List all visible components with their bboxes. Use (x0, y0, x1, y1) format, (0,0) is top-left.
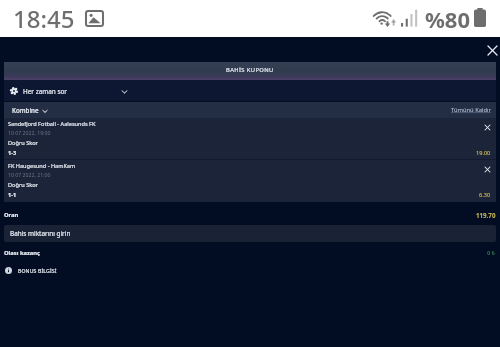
staticText: BONUS BİLGİSİ (18, 267, 57, 274)
staticText: BAHİS KUPONU (226, 66, 274, 74)
staticText: 119.70 (476, 211, 496, 219)
button[interactable]: Her zaman sor (4, 80, 496, 101)
button[interactable]: BONUS BİLGİSİ (2, 263, 57, 278)
staticText: 10 07 2022, 21:00 (8, 171, 51, 178)
staticText: Bahis miktarını girin (10, 229, 71, 238)
staticText: Oran (4, 211, 19, 219)
staticText: %80 (425, 4, 471, 34)
button[interactable]: Bahis miktarını girin (4, 225, 496, 242)
staticText: Doğru Skor (8, 181, 38, 189)
button[interactable]: BAHİS KUPONU (4, 62, 496, 80)
staticText: Sandefjord Fotball - Aalesunds FK (8, 120, 96, 128)
staticText: 18:45 (13, 2, 75, 35)
button[interactable]: Close (483, 41, 500, 60)
staticText: Tümünü Kaldır (451, 106, 491, 114)
staticText: 10 07 2022, 19:00 (8, 129, 51, 136)
button[interactable]: Remove bet (478, 160, 496, 176)
staticText: 19.00 (476, 149, 491, 157)
button[interactable]: Remove bet (478, 118, 496, 134)
staticText: 1-3 (8, 149, 17, 157)
staticText: 6.30 (479, 191, 491, 199)
button[interactable]: Tümünü Kaldır (451, 102, 496, 118)
button[interactable]: Kombine (4, 102, 50, 118)
staticText: Her zaman sor (23, 87, 67, 96)
staticText: Kombine (12, 106, 39, 114)
staticText: FK Haugesund - HamKam (8, 162, 76, 170)
staticText: Olası kazanç (4, 249, 41, 257)
staticText: 1-1 (8, 191, 17, 199)
staticText: 0 ₺ (487, 249, 496, 257)
staticText: Doğru Skor (8, 139, 38, 147)
